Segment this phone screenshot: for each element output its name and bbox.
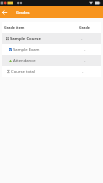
staticText: Grade — [79, 25, 90, 30]
staticText: Sample Exam — [13, 47, 40, 53]
staticText: - — [81, 36, 83, 42]
staticText: Sample Course — [10, 36, 41, 42]
staticText: Attendance — [13, 58, 36, 64]
staticText: Grade item — [4, 25, 25, 30]
button[interactable]: Grade item — [2, 22, 101, 33]
button[interactable]: Sample Exam — [2, 44, 101, 55]
staticText: - — [84, 58, 86, 64]
staticText: Grades — [16, 10, 30, 15]
button[interactable]: Navigate up — [0, 6, 9, 18]
button[interactable]: Attendance — [2, 55, 101, 66]
staticText: - — [84, 47, 86, 53]
button[interactable]: Course total — [2, 66, 101, 77]
button[interactable]: Sample Course — [2, 33, 101, 44]
staticText: - — [82, 69, 84, 75]
staticText: Course total — [11, 69, 35, 75]
